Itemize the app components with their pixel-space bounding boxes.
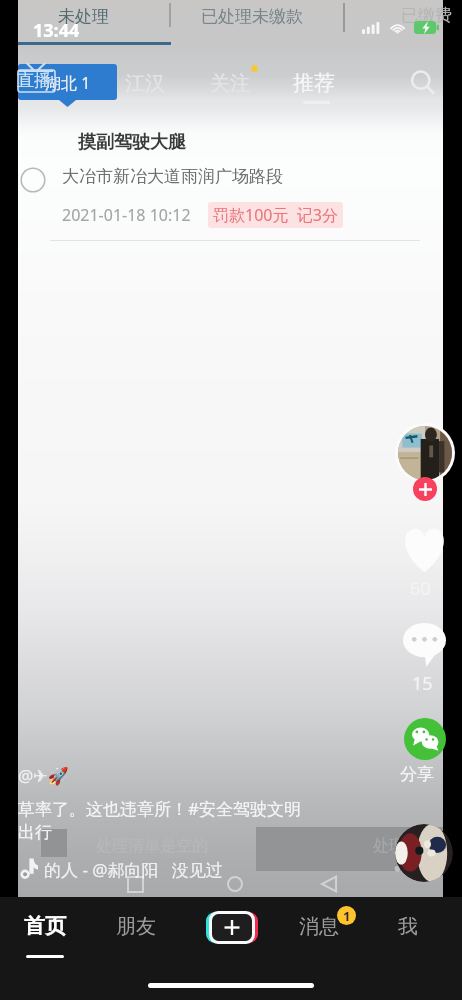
button[interactable]: Create (206, 911, 258, 944)
staticText: 朋友 (116, 914, 156, 939)
staticText: 处理并 (373, 836, 421, 856)
button[interactable]: Author profile (395, 423, 455, 483)
button[interactable]: Like (401, 528, 448, 572)
staticText: 分享 (400, 764, 434, 785)
button[interactable]: Search (405, 65, 441, 101)
staticText: 60 (410, 576, 431, 601)
staticText: 摸副驾驶大腿 (78, 131, 186, 154)
button[interactable]: 江汉 (121, 69, 169, 98)
staticText: 大冶市新冶大道雨润广场路段 (62, 166, 283, 187)
button[interactable]: 我 (382, 903, 442, 953)
staticText: 我 (398, 914, 418, 939)
staticText: 罚款100元 记3分 (213, 204, 338, 226)
staticText: 处理清单是空的 (96, 836, 208, 856)
staticText: 已缴费 (401, 5, 452, 26)
staticText: 1 (343, 907, 351, 925)
staticText: 湖北 1 (45, 72, 91, 94)
button[interactable]: Share to WeChat (404, 718, 446, 760)
button[interactable]: 推荐 (289, 68, 339, 98)
button[interactable]: Music (395, 824, 453, 882)
staticText: 直播 (17, 70, 51, 91)
staticText: 的人 - @郝向阳 没见过 (44, 858, 223, 881)
staticText: @✈🚀 (18, 764, 69, 787)
staticText: 首页 (24, 913, 66, 939)
staticText: 13:44 (33, 18, 80, 43)
staticText: 出行 (18, 822, 52, 843)
button[interactable]: 湖北 1 (18, 64, 117, 100)
staticText: 推荐 (293, 70, 335, 96)
button[interactable]: Comments (403, 623, 446, 667)
staticText: 已处理未缴款 (201, 6, 303, 27)
staticText: 消息 (299, 914, 339, 939)
staticText: 2021-01-18 10:12 (62, 204, 191, 226)
button[interactable]: Follow (413, 477, 437, 501)
staticText: 关注 (210, 71, 250, 96)
button[interactable]: 消息 (285, 903, 375, 953)
button[interactable]: 首页 (8, 903, 104, 969)
button[interactable]: 关注 (206, 69, 254, 98)
button[interactable]: 朋友 (102, 903, 186, 953)
staticText: 15 (412, 671, 433, 696)
staticText: 未处理 (58, 6, 109, 27)
staticText: 草率了。这也违章所！#安全驾驶文明 (18, 797, 301, 820)
staticText: 江汉 (125, 71, 165, 96)
